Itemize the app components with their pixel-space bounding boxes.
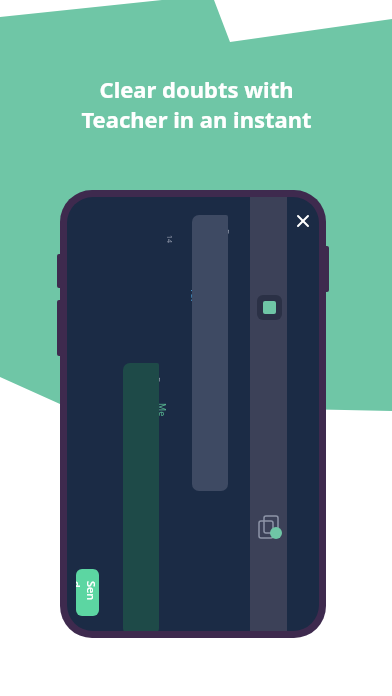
- staticText: Anubhav (Teacher): [189, 290, 201, 304]
- staticText: From: [151, 377, 163, 391]
- staticText: 14 mins: [164, 235, 174, 247]
- staticText: From: [220, 229, 232, 243]
- staticText: 12 mins ✓: [89, 569, 99, 581]
- staticText: Clear doubts with Teacher in an instant: [81, 74, 312, 135]
- button[interactable]: Open notes: [257, 295, 282, 320]
- button[interactable]: Send: [76, 569, 99, 616]
- button[interactable]: Attachments: [256, 513, 284, 541]
- button[interactable]: Close chat: [293, 211, 313, 231]
- staticText: Me: [157, 403, 169, 417]
- staticText: Send: [76, 581, 99, 604]
